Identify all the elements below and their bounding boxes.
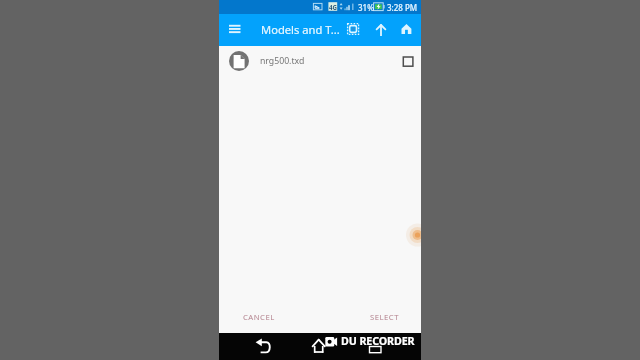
button[interactable]: Up	[370, 19, 392, 41]
staticText: 4G	[329, 3, 338, 11]
button[interactable]: Back	[251, 335, 275, 359]
button[interactable]: Home	[396, 18, 419, 41]
button[interactable]: Menu	[223, 19, 246, 42]
button[interactable]: Home	[308, 335, 330, 357]
staticText: CANCEL	[243, 312, 275, 322]
staticText: Models and T...	[261, 22, 340, 37]
button[interactable]: CANCEL	[231, 305, 287, 329]
staticText: 3:28 PM	[387, 2, 418, 13]
button[interactable]: Recents	[365, 342, 387, 360]
button[interactable]: nrg500.txd	[219, 46, 421, 76]
staticText: SELECT	[370, 312, 399, 322]
button[interactable]: Select file	[398, 51, 418, 71]
button[interactable]: Select all	[343, 18, 366, 41]
button[interactable]: SELECT	[357, 305, 411, 329]
staticText: DU RECORDER	[341, 334, 415, 349]
staticText: 31%	[358, 2, 374, 13]
staticText: nrg500.txd	[260, 55, 305, 67]
